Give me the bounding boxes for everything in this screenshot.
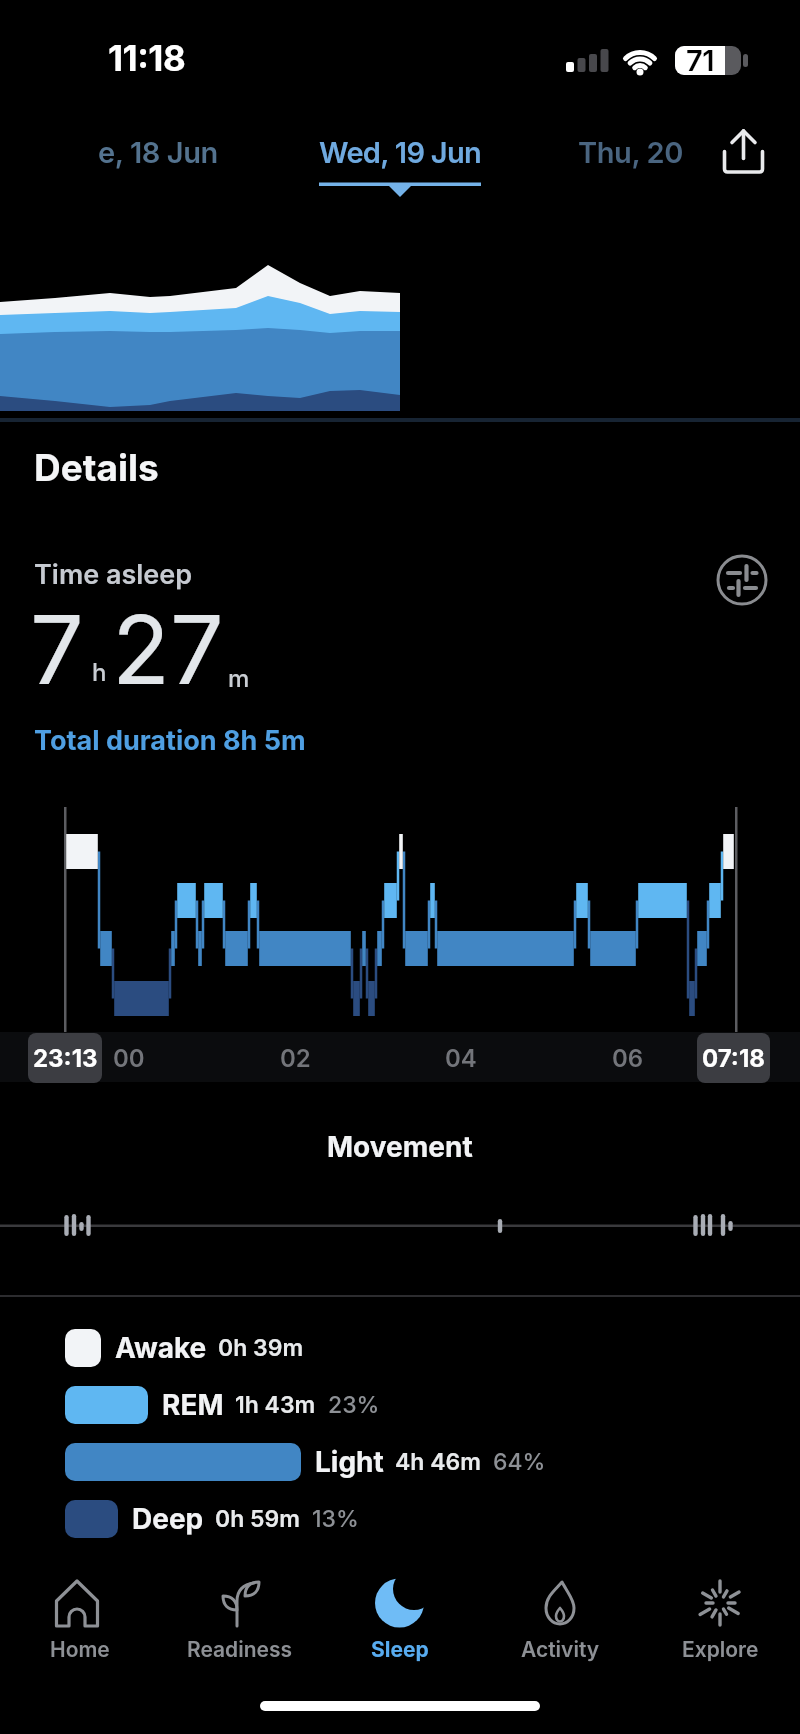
staticText: Time asleep bbox=[34, 558, 193, 591]
staticText: 06 bbox=[612, 1044, 644, 1073]
button[interactable]: e, 18 Jun bbox=[98, 135, 218, 170]
staticText: 1h 43m bbox=[235, 1391, 316, 1419]
staticText: REM bbox=[162, 1388, 224, 1422]
staticText: 00 bbox=[113, 1044, 145, 1073]
staticText: Home bbox=[50, 1637, 110, 1662]
staticText: 4h 46m bbox=[395, 1448, 481, 1476]
button[interactable] bbox=[712, 550, 772, 610]
staticText: Awake bbox=[115, 1331, 207, 1365]
staticText: Activity bbox=[521, 1637, 600, 1662]
staticText: Sleep bbox=[371, 1637, 429, 1662]
staticText: m bbox=[228, 664, 250, 693]
button[interactable]: Awake bbox=[65, 1328, 304, 1368]
staticText: 23:13 bbox=[33, 1044, 98, 1073]
button[interactable] bbox=[715, 120, 775, 182]
staticText: 71 bbox=[686, 43, 714, 78]
staticText: 02 bbox=[280, 1044, 311, 1073]
staticText: 11:18 bbox=[108, 37, 186, 79]
staticText: Total duration 8h 5m bbox=[34, 724, 306, 757]
button[interactable]: REM bbox=[65, 1385, 380, 1425]
staticText: 04 bbox=[445, 1044, 477, 1073]
button[interactable]: Deep bbox=[65, 1499, 359, 1539]
staticText: Light bbox=[315, 1445, 384, 1479]
staticText: Deep bbox=[132, 1502, 204, 1536]
button[interactable]: Wed, 19 Jun bbox=[150, 135, 650, 170]
staticText: h bbox=[92, 658, 107, 687]
staticText: 0h 39m bbox=[218, 1334, 304, 1362]
staticText: 27 bbox=[112, 592, 224, 707]
staticText: 64% bbox=[493, 1448, 546, 1476]
button[interactable]: Activity bbox=[480, 1579, 640, 1662]
staticText: 7 bbox=[30, 592, 84, 707]
button[interactable]: Light bbox=[65, 1442, 546, 1482]
staticText: 13% bbox=[312, 1505, 359, 1533]
staticText: Explore bbox=[682, 1637, 759, 1662]
staticText: 0h 59m bbox=[215, 1505, 300, 1533]
staticText: Readiness bbox=[187, 1637, 293, 1662]
staticText: Details bbox=[34, 445, 159, 490]
staticText: Movement bbox=[327, 1130, 473, 1164]
button[interactable]: Sleep bbox=[320, 1579, 480, 1662]
staticText: 23% bbox=[328, 1391, 380, 1419]
button[interactable]: Readiness bbox=[160, 1579, 320, 1662]
button[interactable]: Thu, 20 bbox=[578, 135, 684, 170]
button[interactable]: Home bbox=[0, 1579, 160, 1662]
staticText: Wed, 19 Jun bbox=[319, 135, 482, 170]
staticText: 07:18 bbox=[702, 1044, 765, 1073]
button[interactable]: Explore bbox=[640, 1579, 800, 1662]
